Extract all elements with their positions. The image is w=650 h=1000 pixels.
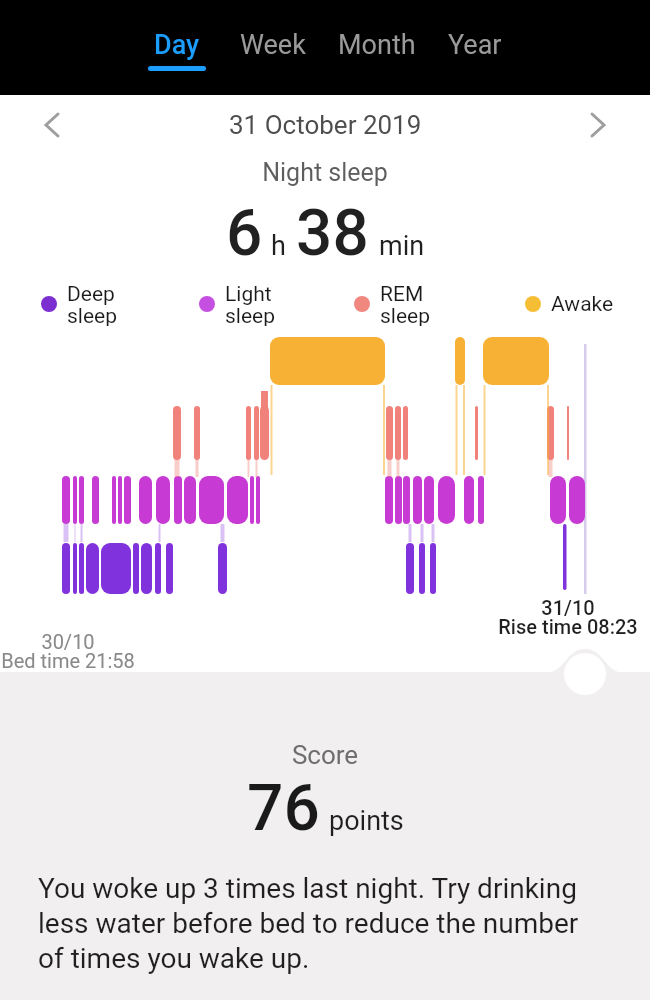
staticText: Light sleep: [225, 282, 276, 326]
button[interactable]: Year: [448, 0, 502, 95]
button[interactable]: Day: [148, 0, 206, 95]
staticText: Score: [0, 740, 650, 770]
staticText: 31 October 2019: [229, 110, 422, 140]
staticText: Deep sleep: [67, 282, 118, 326]
staticText: REM sleep: [380, 282, 431, 326]
staticText: Awake: [551, 292, 614, 317]
staticText: h: [271, 230, 286, 262]
staticText: min: [379, 230, 425, 262]
staticText: Year: [448, 29, 502, 61]
staticText: 31/10 Rise time 08:23: [478, 596, 650, 639]
staticText: 30/10 Bed time 21:58: [0, 630, 143, 673]
staticText: Day: [154, 29, 200, 61]
button[interactable]: REM sleep: [354, 282, 431, 326]
staticText: 38: [296, 196, 369, 268]
button[interactable]: Light sleep: [199, 282, 276, 326]
button[interactable]: Month: [338, 0, 416, 95]
button[interactable]: Week: [240, 0, 306, 95]
staticText: Month: [338, 29, 416, 61]
staticText: You woke up 3 times last night. Try drin…: [38, 872, 579, 975]
button[interactable]: Awake: [525, 282, 614, 326]
button[interactable]: Deep sleep: [41, 282, 118, 326]
staticText: 76: [247, 771, 320, 841]
button[interactable]: [592, 113, 606, 137]
button[interactable]: [44, 113, 58, 137]
staticText: Week: [240, 29, 306, 61]
staticText: points: [329, 805, 404, 837]
staticText: 6: [226, 196, 263, 268]
staticText: Night sleep: [0, 158, 650, 187]
